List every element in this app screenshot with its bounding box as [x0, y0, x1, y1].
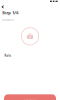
staticText: Continue: [24, 98, 36, 100]
button[interactable]: Continue: [4, 94, 56, 100]
button[interactable]: Back: [0, 4, 5, 9]
staticText: Step 1/6: [2, 10, 18, 15]
staticText: Work details: [2, 19, 14, 21]
staticText: Role: [4, 54, 11, 58]
